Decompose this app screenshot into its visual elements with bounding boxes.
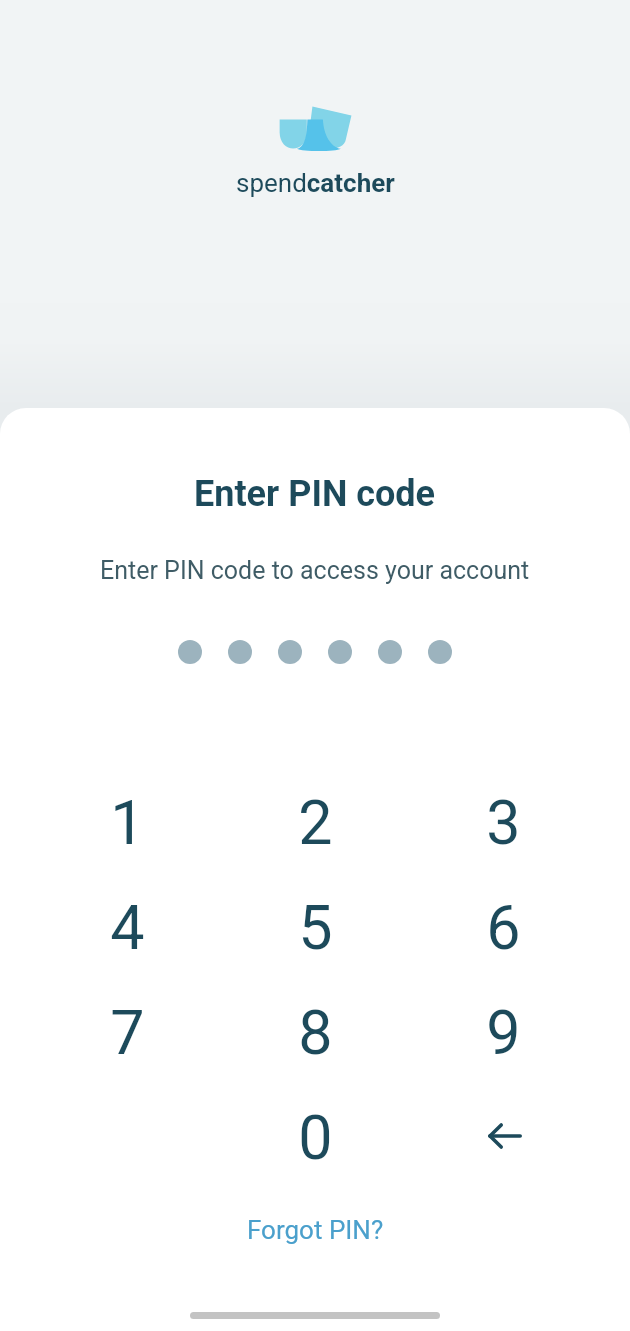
button[interactable]: 1: [33, 770, 221, 875]
button[interactable]: 8: [221, 980, 409, 1085]
staticText: 2: [298, 787, 333, 858]
button[interactable]: 3: [409, 770, 597, 875]
staticText: 9: [486, 997, 521, 1068]
staticText: 8: [298, 997, 333, 1068]
staticText: Forgot PIN?: [247, 1215, 384, 1245]
button[interactable]: 4: [33, 875, 221, 980]
button[interactable]: Forgot PIN?: [229, 1198, 402, 1262]
staticText: 5: [298, 892, 333, 963]
staticText: 4: [110, 892, 145, 963]
button[interactable]: Backspace: [409, 1085, 597, 1190]
button[interactable]: 9: [409, 980, 597, 1085]
button[interactable]: 5: [221, 875, 409, 980]
staticText: Enter PIN code to access your account: [100, 556, 530, 585]
staticText: 7: [110, 997, 145, 1068]
staticText: spendcatcher: [236, 168, 395, 198]
staticText: 0: [298, 1102, 333, 1173]
staticText: 6: [486, 892, 521, 963]
staticText: 3: [486, 787, 521, 858]
button[interactable]: 6: [409, 875, 597, 980]
button[interactable]: 0: [221, 1085, 409, 1190]
staticText: Enter PIN code: [194, 473, 436, 515]
button[interactable]: 2: [221, 770, 409, 875]
button[interactable]: 7: [33, 980, 221, 1085]
staticText: 1: [110, 787, 145, 858]
